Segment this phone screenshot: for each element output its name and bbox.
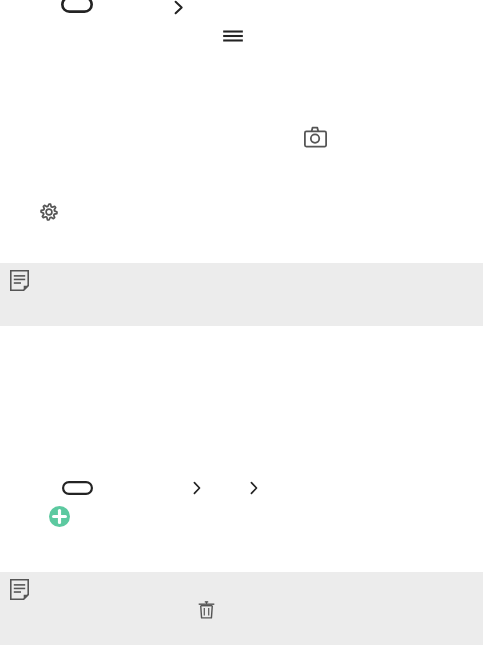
button[interactable]: Delete: [198, 600, 215, 619]
button[interactable]: Note: [0, 572, 483, 645]
button[interactable]: Expand: [188, 479, 204, 497]
button[interactable]: Camera: [304, 126, 327, 147]
button[interactable]: Menu: [223, 28, 243, 44]
button[interactable]: Tag: [61, 0, 93, 13]
button[interactable]: Note: [0, 263, 483, 326]
button[interactable]: Settings: [39, 202, 59, 222]
button[interactable]: Note: [10, 579, 29, 600]
button[interactable]: Note: [10, 270, 29, 291]
button[interactable]: Expand: [168, 0, 187, 17]
button[interactable]: Add: [49, 506, 70, 527]
button[interactable]: Expand: [245, 479, 261, 497]
button[interactable]: Tag: [62, 481, 93, 495]
